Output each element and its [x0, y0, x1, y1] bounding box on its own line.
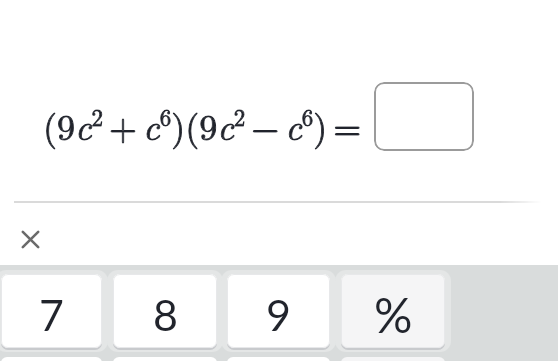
- staticText: (9c2 + c6)(9c2 − c6) =: [43, 99, 362, 150]
- staticText: 9: [266, 289, 291, 341]
- button[interactable]: 8: [113, 274, 217, 348]
- staticText: 7: [39, 289, 64, 341]
- staticText: %: [374, 286, 413, 344]
- staticText: (9c2 + c6)(9c2 − c6) =: [43, 99, 362, 150]
- staticText: 8: [153, 289, 178, 341]
- button[interactable]: 7: [1, 274, 102, 348]
- button[interactable]: [10, 219, 50, 259]
- button[interactable]: %: [341, 274, 445, 348]
- button[interactable]: [374, 82, 474, 151]
- button[interactable]: 9: [227, 274, 330, 348]
